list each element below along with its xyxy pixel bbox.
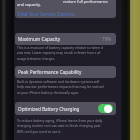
staticText: restore full performance: [63, 0, 108, 4]
staticText: Maximum Capacity: [18, 36, 61, 42]
staticText: 79%: [102, 36, 112, 42]
staticText: Optimized Battery Charging: [18, 106, 80, 112]
staticText: Find Your Service Options: [18, 11, 75, 17]
staticText: and capacity.: [17, 2, 41, 7]
button[interactable]: Optimized Battery Charging: [98, 104, 113, 113]
staticText: This is a measure of battery capacity re…: [17, 45, 105, 61]
button[interactable]: Optimized Battery Charging: [15, 102, 116, 115]
staticText: Peak Performance Capability: [18, 69, 82, 75]
staticText: Built-in dynamic software and hardware s…: [17, 79, 105, 95]
button[interactable]: Peak Performance Capability: [15, 66, 116, 78]
staticText: To reduce battery aging, iPhone learns f…: [17, 118, 105, 134]
button[interactable]: [15, 0, 116, 18]
button[interactable]: Maximum Capacity: [15, 33, 116, 45]
